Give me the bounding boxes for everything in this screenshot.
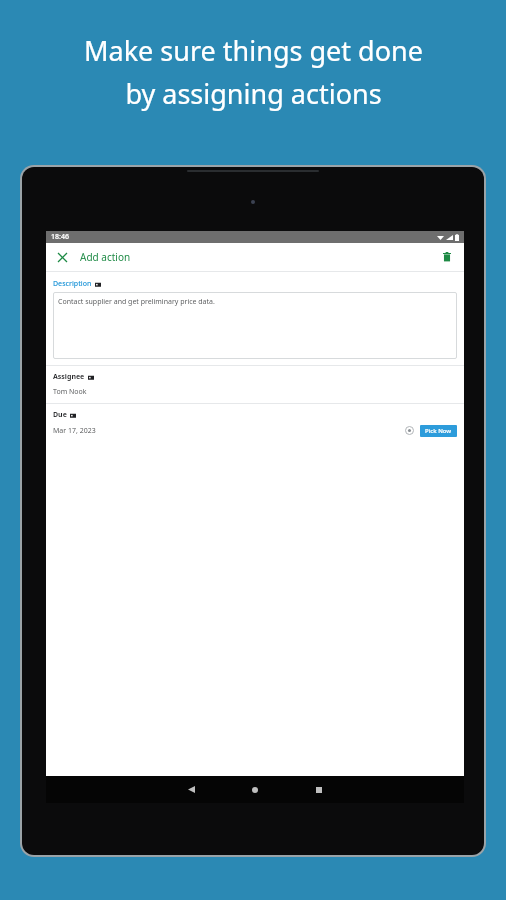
staticText: Pick Now: [425, 427, 452, 435]
button[interactable]: Close: [52, 247, 72, 267]
staticText: Make sure things get done: [84, 32, 423, 69]
button[interactable]: Back: [173, 776, 209, 803]
button[interactable]: Recent apps: [301, 776, 337, 803]
staticText: by assigning actions: [125, 75, 382, 112]
staticText: Contact supplier and get preliminary pri…: [58, 297, 215, 307]
staticText: Assignee: [53, 372, 85, 382]
button[interactable]: Delete: [437, 247, 457, 267]
staticText: Tom Nook: [53, 387, 87, 397]
staticText: 18:46: [51, 232, 69, 242]
button[interactable]: Mar 17, 2023: [53, 426, 96, 436]
button[interactable]: Home: [237, 776, 273, 803]
staticText: Description: [53, 279, 92, 289]
button[interactable]: Description: [46, 272, 464, 365]
button[interactable]: Clear due date: [403, 424, 416, 437]
staticText: Due: [53, 410, 67, 420]
button[interactable]: Add action: [80, 250, 131, 264]
button[interactable]: Assignee: [46, 366, 464, 403]
button[interactable]: Pick Now: [420, 425, 457, 437]
